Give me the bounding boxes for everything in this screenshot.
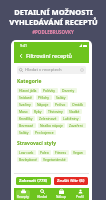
staticText: Nápoje [37,102,49,107]
button[interactable]: Hledat v receptech [17,66,86,74]
staticText: 9:41 [20,43,27,48]
staticText: Profil [76,195,84,199]
button[interactable]: Dezerty [60,88,77,93]
button[interactable]: Svačiny [17,102,33,107]
button[interactable]: Zrušit filtr (6) [54,177,88,185]
staticText: Stravovací styly [17,140,57,147]
button[interactable]: Nákup [51,188,70,200]
staticText: Fitness [55,150,67,155]
staticText: Těstoviny [48,109,63,114]
staticText: Pečivo [55,102,66,107]
button[interactable]: Sladké [67,109,82,114]
button[interactable]: Přílohy [36,95,52,100]
staticText: Přílohy [38,95,50,100]
button[interactable]: Profil [70,188,89,200]
button[interactable]: Maso [17,109,30,114]
staticText: Svačiny [19,102,31,107]
button[interactable]: Zobrazit (778) [16,177,51,185]
staticText: Snídaně [19,95,32,100]
button[interactable]: Knedlíky [17,116,35,121]
staticText: Hlavní jídla [19,88,37,93]
button[interactable]: Saláty [54,95,68,100]
button[interactable]: Nápoje [35,102,51,107]
staticText: Knedlíky [19,116,33,121]
button[interactable]: Bezlepkové [17,157,39,162]
staticText: Saláty [56,95,66,100]
button[interactable]: Pro kojence [33,130,56,135]
button[interactable]: Snídaně [17,95,34,100]
button[interactable]: Zeleninové [37,116,59,121]
staticText: Bezmasé [19,123,34,128]
button[interactable]: Nealko nápoje [38,123,65,128]
button[interactable]: Vegetariánské [41,157,68,162]
staticText: Ryby [34,109,42,114]
button[interactable]: Low carb [17,150,36,155]
staticText: Paleo [40,150,49,155]
staticText: Nealko nápoje [40,123,63,128]
button[interactable]: Luštěniny [61,116,81,121]
button[interactable]: Veganské [71,150,86,155]
staticText: Polévky [43,88,56,93]
staticText: Omáčky [72,102,84,107]
button[interactable]: Fitness [53,150,69,155]
button[interactable]: Bezmasé [17,123,36,128]
staticText: Zobrazit (778) [19,178,48,184]
staticText: Pro kojence [35,130,54,135]
button[interactable]: Saláty [17,130,31,135]
staticText: Zavařeniny [69,123,84,128]
staticText: Hledat [37,195,47,199]
staticText: DETAILNÍ MOŽNOSTI [14,7,93,17]
staticText: Kategorie [17,78,42,85]
button[interactable]: Omáčky [70,102,86,107]
button[interactable]: Polévky [41,88,58,93]
button[interactable]: Zpět [16,51,25,60]
button[interactable]: Recepty [14,188,32,200]
staticText: Dezerty [62,88,75,93]
staticText: Hledat v receptech [25,67,62,73]
button[interactable]: Hledat [32,188,51,200]
button[interactable]: Paleo [38,150,51,155]
staticText: Filtrování receptů [26,52,73,59]
staticText: Zeleninové [39,116,57,121]
button[interactable]: Hlavní jídla [17,88,39,93]
staticText: Veganské [73,150,84,155]
staticText: Low carb [19,150,34,155]
staticText: Bezlepkové [19,157,37,162]
staticText: Vegetariánské [43,157,66,162]
staticText: #PODLEBRUSOVKY [32,29,74,35]
staticText: Zrušit filtr (6) [57,178,85,184]
staticText: Maso [19,109,28,114]
button[interactable]: Těstoviny [46,109,65,114]
staticText: Saláty [19,130,29,135]
button[interactable]: Ryby [32,109,44,114]
staticText: Nákup [56,195,66,199]
button[interactable]: Pečivo [53,102,68,107]
staticText: Recepty [17,195,29,199]
staticText: VYHLEDÁVÁNÍ RECEPTŮ [9,17,98,27]
staticText: Sladké [69,109,80,114]
button[interactable]: Zavařeniny [67,123,86,128]
staticText: Luštěniny [63,116,79,121]
